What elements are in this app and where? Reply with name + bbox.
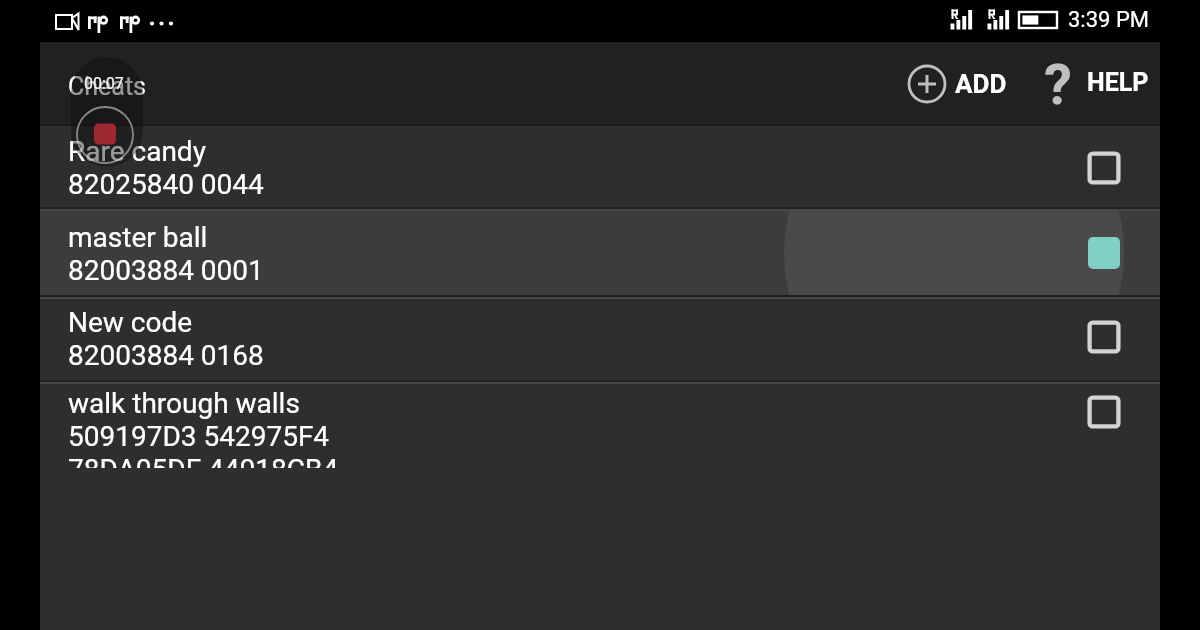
button[interactable]: Disabled bbox=[1087, 395, 1121, 429]
button[interactable]: Enabled bbox=[1087, 236, 1121, 270]
staticText: master ball bbox=[68, 221, 208, 254]
button[interactable]: walk through walls bbox=[40, 382, 1160, 468]
staticText: 82003884 0001 bbox=[68, 254, 264, 287]
button[interactable]: Disabled bbox=[1087, 151, 1121, 185]
button[interactable]: Disabled bbox=[1087, 320, 1121, 354]
button[interactable]: ADD bbox=[908, 56, 1015, 112]
button[interactable]: Stop screen recording bbox=[71, 57, 143, 167]
staticText: 82025840 0044 bbox=[68, 168, 264, 201]
staticText: Cheats bbox=[68, 72, 146, 101]
button[interactable]: ? bbox=[1042, 54, 1159, 110]
button[interactable]: Rare candy bbox=[40, 126, 1160, 209]
staticText: 78DA05DF 44018CB4 bbox=[68, 453, 339, 468]
staticText: New code bbox=[68, 306, 193, 339]
staticText: 82003884 0168 bbox=[68, 339, 264, 372]
staticText: ? bbox=[1044, 52, 1072, 108]
staticText: 509197D3 542975F4 bbox=[68, 420, 330, 453]
staticText: HELP bbox=[1087, 68, 1149, 97]
button[interactable]: master ball bbox=[40, 209, 1160, 297]
staticText: walk through walls bbox=[68, 387, 300, 420]
staticText: ADD bbox=[955, 69, 1007, 99]
staticText: Rare candy bbox=[68, 135, 206, 168]
staticText: 3:39 PM bbox=[1068, 7, 1149, 33]
button[interactable]: New code bbox=[40, 297, 1160, 382]
staticText: 00:07 bbox=[84, 74, 124, 93]
